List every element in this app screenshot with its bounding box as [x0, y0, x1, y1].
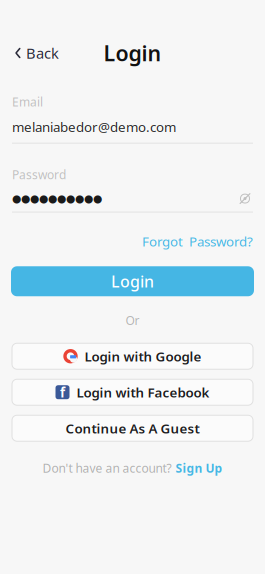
- staticText: Continue As A Guest: [65, 419, 199, 437]
- staticText: Don't have an account?: [42, 460, 171, 476]
- staticText: ●●●●●●●●●●: [12, 192, 102, 205]
- staticText: Login: [111, 271, 154, 292]
- staticText: Email: [12, 94, 43, 110]
- button[interactable]: Show password: [237, 191, 253, 207]
- button[interactable]: Forgot Password?: [142, 230, 253, 253]
- staticText: Back: [26, 43, 59, 63]
- button[interactable]: Back: [10, 39, 63, 67]
- staticText: melaniabedor@demo.com: [12, 118, 176, 136]
- staticText: Login: [103, 39, 161, 67]
- button[interactable]: Continue As A Guest: [12, 415, 253, 441]
- button[interactable]: Login with Google: [12, 343, 253, 369]
- staticText: Sign Up: [175, 460, 222, 476]
- button[interactable]: Login: [11, 266, 254, 296]
- staticText: Password: [12, 167, 66, 182]
- staticText: f: [60, 383, 65, 401]
- staticText: Login with Google: [84, 347, 201, 365]
- staticText: Or: [125, 312, 139, 328]
- button[interactable]: Don't have an account?: [42, 456, 222, 480]
- staticText: Forgot Password?: [142, 233, 253, 250]
- button[interactable]: f: [12, 379, 253, 405]
- staticText: Login with Facebook: [76, 383, 209, 401]
